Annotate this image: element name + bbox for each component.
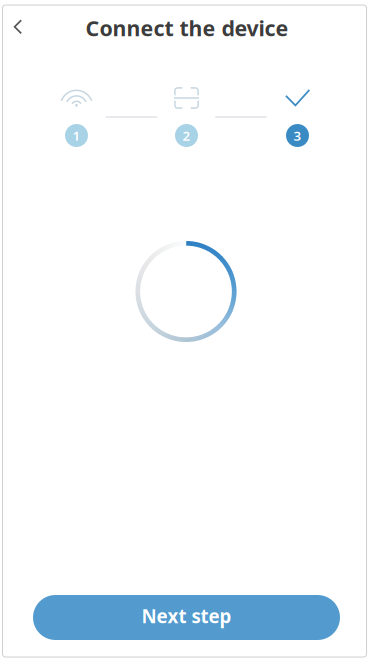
button[interactable]: Back bbox=[0, 9, 36, 45]
staticText: 3 bbox=[293, 127, 301, 144]
button[interactable]: Next step bbox=[33, 595, 340, 640]
staticText: Connect the device bbox=[85, 14, 288, 42]
staticText: 2 bbox=[182, 127, 190, 144]
staticText: Next step bbox=[141, 604, 231, 628]
staticText: 1 bbox=[72, 127, 80, 144]
